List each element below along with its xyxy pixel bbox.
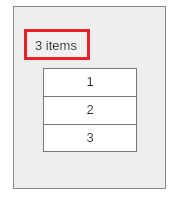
staticText: 3 [86, 130, 94, 145]
button[interactable]: 3 [43, 125, 137, 151]
button[interactable]: 2 [43, 97, 137, 124]
staticText: 3 items [35, 38, 77, 53]
button[interactable]: 3 items [24, 29, 90, 60]
staticText: 2 [86, 102, 94, 117]
staticText: 1 [86, 74, 94, 89]
button[interactable]: 1 [43, 69, 137, 96]
